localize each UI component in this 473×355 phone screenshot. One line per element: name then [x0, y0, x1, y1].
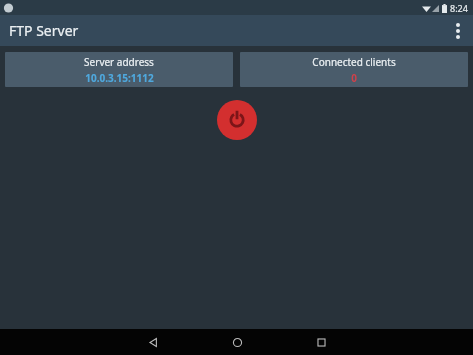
- button[interactable]: Connected clients: [240, 52, 468, 87]
- button[interactable]: More options: [443, 15, 473, 46]
- button[interactable]: Recent apps: [288, 329, 354, 355]
- staticText: FTP Server: [9, 21, 79, 40]
- staticText: Connected clients: [312, 55, 396, 69]
- staticText: 0: [351, 71, 357, 85]
- button[interactable]: Start or stop server: [217, 100, 257, 140]
- staticText: 10.0.3.15:1112: [85, 71, 154, 85]
- button[interactable]: Home: [204, 329, 270, 355]
- staticText: 8:24: [450, 2, 468, 14]
- button[interactable]: Server address: [5, 52, 233, 87]
- button[interactable]: Back: [120, 329, 186, 355]
- staticText: Server address: [84, 55, 154, 69]
